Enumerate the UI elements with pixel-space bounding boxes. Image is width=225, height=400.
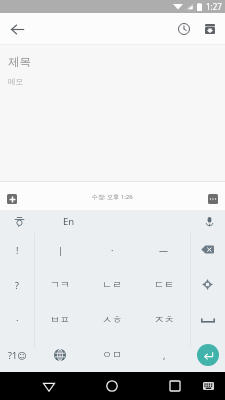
button[interactable]: Enter bbox=[190, 337, 225, 372]
staticText: , bbox=[163, 349, 166, 361]
staticText: ㅈㅊ bbox=[154, 313, 174, 326]
staticText: ?1☺ bbox=[8, 349, 27, 361]
button[interactable]: ㅅㅎ bbox=[86, 302, 138, 337]
button[interactable]: Reminder bbox=[173, 18, 195, 40]
button[interactable]: Back bbox=[37, 374, 61, 398]
button[interactable]: Space bbox=[190, 302, 225, 337]
button[interactable]: Back bbox=[5, 17, 29, 41]
button[interactable]: Archive bbox=[199, 18, 221, 40]
staticText: — bbox=[159, 244, 169, 256]
button[interactable]: ㄴㄹ bbox=[86, 267, 138, 302]
staticText: ㅇㅁ bbox=[102, 348, 122, 361]
button[interactable]: ?1☺ bbox=[0, 337, 34, 372]
button[interactable]: Google search bbox=[10, 212, 28, 230]
button[interactable]: ! bbox=[0, 232, 34, 267]
button[interactable]: Voice input bbox=[200, 212, 218, 230]
button[interactable]: Recents bbox=[163, 374, 187, 398]
button[interactable]: Change keyboard bbox=[197, 375, 219, 397]
button[interactable]: Backspace bbox=[190, 232, 225, 267]
button[interactable]: · bbox=[0, 302, 34, 337]
staticText: · bbox=[111, 244, 114, 256]
button[interactable]: | bbox=[34, 232, 86, 267]
staticText: | bbox=[58, 244, 63, 256]
staticText: 제목 bbox=[8, 55, 31, 69]
button[interactable]: ㅈㅊ bbox=[138, 302, 190, 337]
staticText: 메모 bbox=[8, 77, 23, 86]
button[interactable] bbox=[34, 337, 86, 372]
button[interactable]: ㅂㅍ bbox=[34, 302, 86, 337]
staticText: 1:27 bbox=[206, 1, 222, 12]
button[interactable]: — bbox=[138, 232, 190, 267]
staticText: ㄷㅌ bbox=[154, 278, 174, 291]
button[interactable]: More options bbox=[203, 189, 223, 209]
button[interactable]: ㄷㅌ bbox=[138, 267, 190, 302]
staticText: ㅂㅍ bbox=[50, 313, 70, 326]
staticText: · bbox=[16, 314, 19, 326]
button[interactable]: Home bbox=[100, 374, 124, 398]
button[interactable]: Add bbox=[2, 189, 22, 209]
button[interactable]: ㅇㅁ bbox=[86, 337, 138, 372]
staticText: ? bbox=[15, 279, 19, 291]
button[interactable]: ? bbox=[0, 267, 34, 302]
staticText: ㅅㅎ bbox=[102, 313, 122, 326]
button[interactable]: ㄱㅋ bbox=[34, 267, 86, 302]
staticText: ㄴㄹ bbox=[102, 278, 122, 291]
staticText: ! bbox=[16, 244, 19, 256]
staticText: En bbox=[63, 215, 75, 228]
staticText: 수정: 오후 1:26 bbox=[92, 193, 133, 201]
staticText: ㄱㅋ bbox=[50, 278, 70, 291]
button[interactable]: Move cursor bbox=[190, 267, 225, 302]
